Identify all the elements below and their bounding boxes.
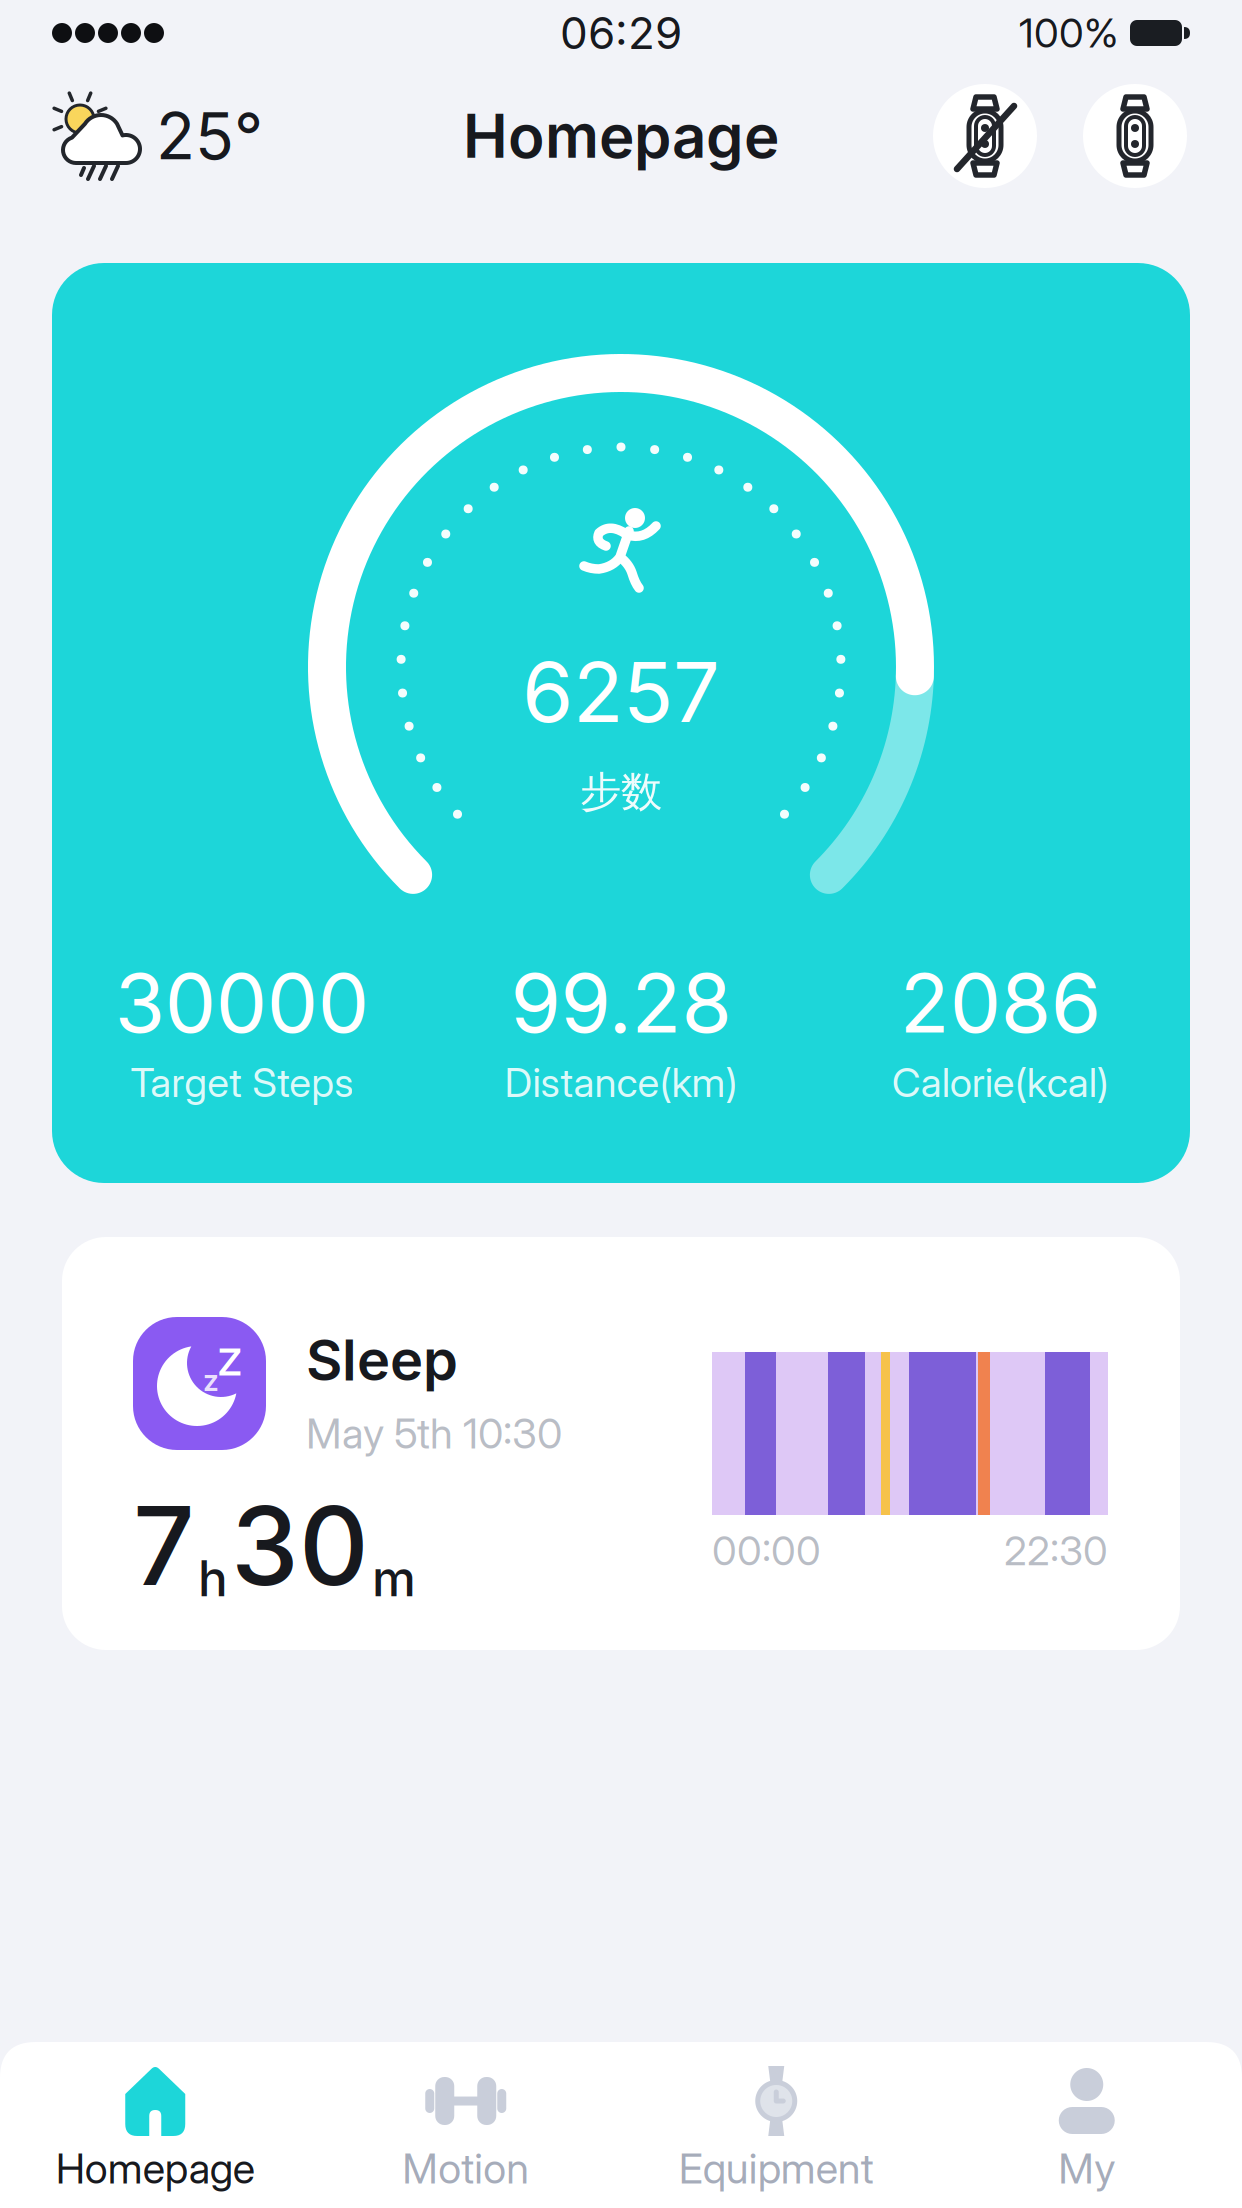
staticText: 100%	[1019, 9, 1118, 57]
button[interactable]: My	[931, 2066, 1242, 2193]
button[interactable]: Motion	[310, 2066, 621, 2193]
staticText: 30	[231, 1482, 369, 1609]
staticText: May 5th 10:30	[306, 1409, 562, 1458]
staticText: Target Steps	[130, 1059, 353, 1106]
staticText: Equipment	[679, 2144, 874, 2193]
staticText: 22:30	[1004, 1527, 1108, 1574]
staticText: Calorie(kcal)	[892, 1059, 1109, 1106]
staticText: Homepage	[56, 2144, 255, 2193]
staticText: Homepage	[463, 101, 779, 171]
staticText: z	[203, 1363, 219, 1398]
button[interactable]: Equipment	[621, 2066, 931, 2193]
staticText: m	[372, 1549, 416, 1607]
staticText: 30000	[115, 955, 369, 1051]
button[interactable]	[933, 84, 1037, 188]
staticText: 06:29	[560, 7, 682, 59]
staticText: Sleep	[306, 1327, 458, 1393]
staticText: 25°	[156, 98, 263, 174]
button[interactable]: z	[62, 1237, 1180, 1650]
staticText: Motion	[402, 2144, 529, 2193]
staticText: h	[198, 1549, 228, 1607]
staticText: 00:00	[712, 1527, 821, 1574]
staticText: Distance(km)	[504, 1059, 737, 1106]
staticText: Z	[218, 1340, 242, 1384]
staticText: 6257	[522, 643, 720, 741]
staticText: 2086	[900, 955, 1101, 1051]
staticText: 步数	[580, 767, 662, 817]
button[interactable]: 6257	[52, 263, 1190, 1183]
button[interactable]: Homepage	[0, 2066, 310, 2193]
staticText: 7	[133, 1482, 195, 1609]
staticText: 99.28	[510, 955, 731, 1051]
button[interactable]: 25°	[50, 90, 263, 182]
staticText: My	[1058, 2144, 1115, 2193]
button[interactable]	[1083, 84, 1187, 188]
